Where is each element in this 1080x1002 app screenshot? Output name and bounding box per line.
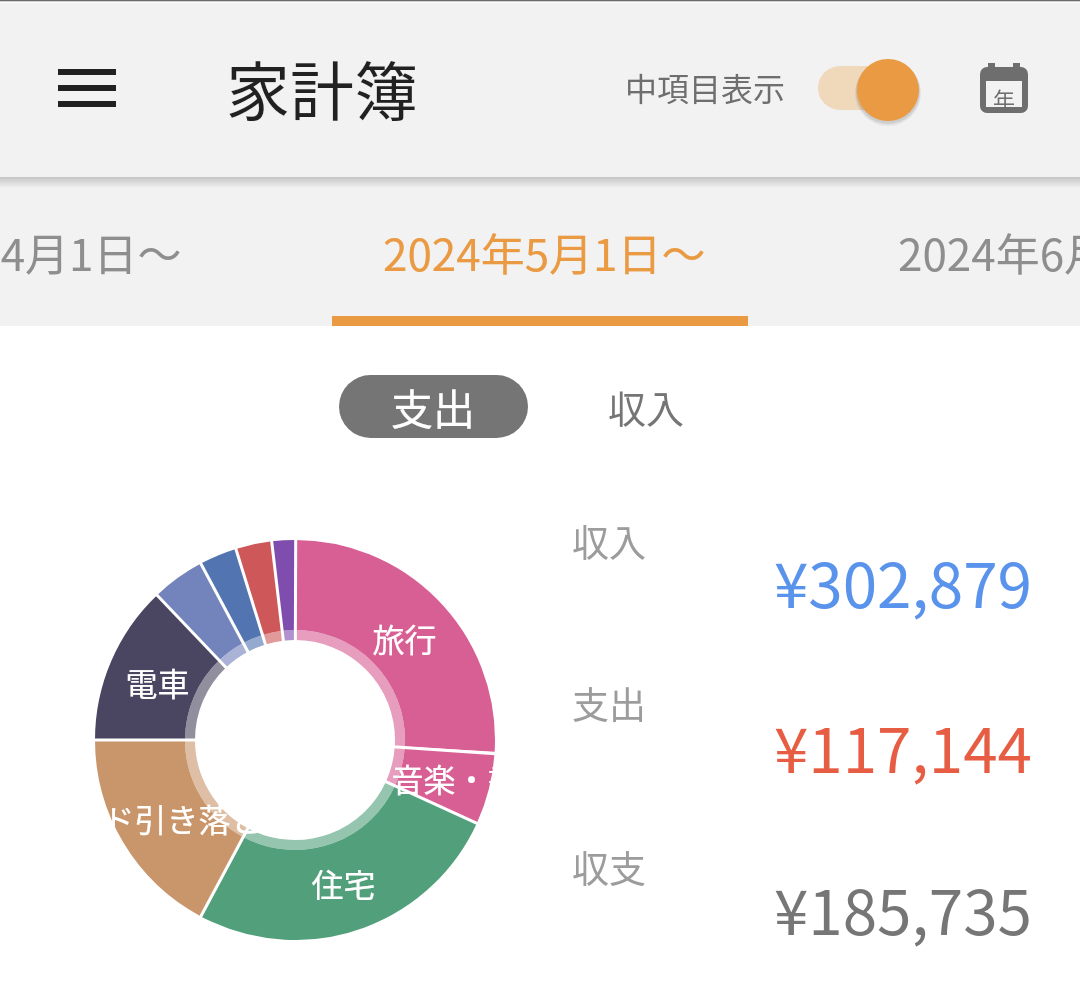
staticText: 支出 xyxy=(572,676,646,730)
staticText: ¥185,735 xyxy=(700,863,1032,953)
staticText: 電車 xyxy=(125,659,190,705)
staticText: 収入 xyxy=(608,379,685,434)
button[interactable]: 2024年6月1日〜 xyxy=(898,220,1080,284)
staticText: カード引き落とし xyxy=(95,795,295,841)
staticText: 収支 xyxy=(572,840,646,894)
button[interactable]: 2024年5月1日〜 xyxy=(383,220,706,284)
staticText: 年 xyxy=(993,82,1016,114)
staticText: ¥302,879 xyxy=(700,536,1032,626)
staticText: 旅行 xyxy=(372,615,437,661)
button[interactable]: 支出 xyxy=(339,375,528,438)
button[interactable]: Open navigation menu xyxy=(36,48,138,132)
button[interactable]: Show medium categories xyxy=(806,48,934,132)
staticText: 家計簿 xyxy=(226,41,418,134)
button[interactable]: 収入 xyxy=(570,375,722,438)
staticText: 音楽・書籍 xyxy=(391,755,495,801)
staticText: 収入 xyxy=(572,514,646,568)
staticText: 中項目表示 xyxy=(625,64,786,110)
staticText: ¥117,144 xyxy=(700,701,1032,791)
button[interactable]: Choose year xyxy=(964,50,1044,134)
staticText: 支出 xyxy=(391,376,476,437)
button[interactable]: 2024年4月1日〜 xyxy=(0,220,182,284)
staticText: 住宅 xyxy=(311,860,376,906)
